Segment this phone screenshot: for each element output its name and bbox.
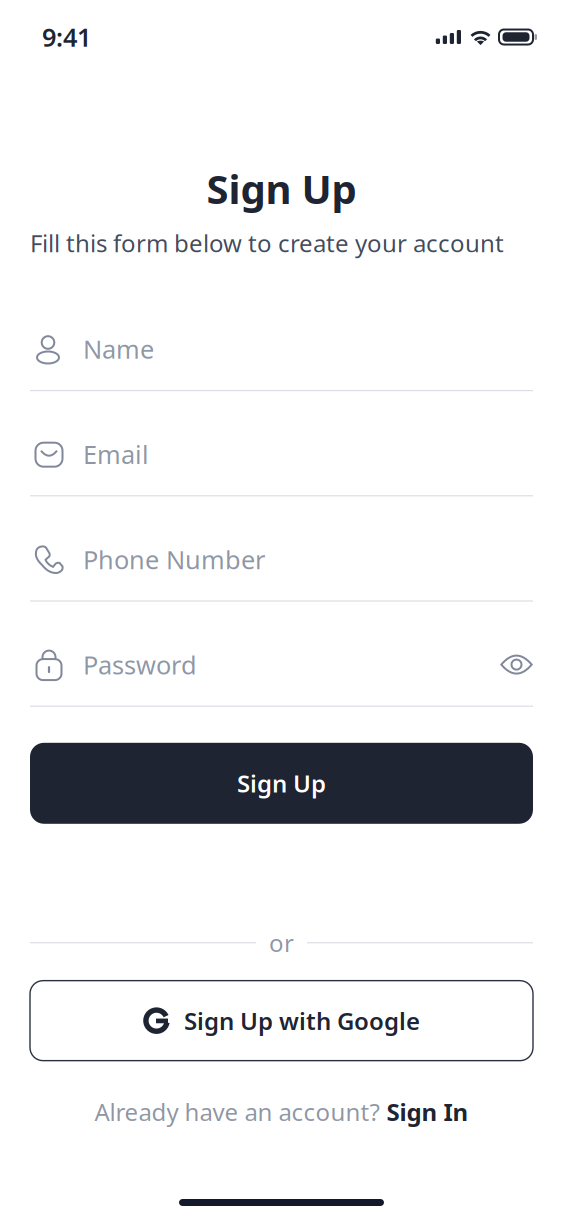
staticText: Sign Up <box>206 162 356 215</box>
button[interactable]: Already have an account? <box>94 1096 468 1128</box>
button[interactable]: Sign Up with Google <box>30 981 533 1061</box>
staticText: Sign Up <box>237 767 326 799</box>
staticText: Email <box>83 437 149 471</box>
staticText: or <box>269 927 294 959</box>
staticText: Phone Number <box>83 543 265 576</box>
button[interactable]: Sign Up <box>30 743 533 824</box>
staticText: Sign In <box>386 1096 468 1128</box>
staticText: 9:41 <box>42 20 91 54</box>
staticText: Password <box>83 648 197 681</box>
staticText: Sign Up with Google <box>184 1005 420 1037</box>
staticText: Already have an account? <box>94 1096 379 1128</box>
button[interactable]: Show password <box>490 653 533 677</box>
staticText: Fill this form below to create your acco… <box>30 227 504 259</box>
staticText: Name <box>83 332 154 366</box>
